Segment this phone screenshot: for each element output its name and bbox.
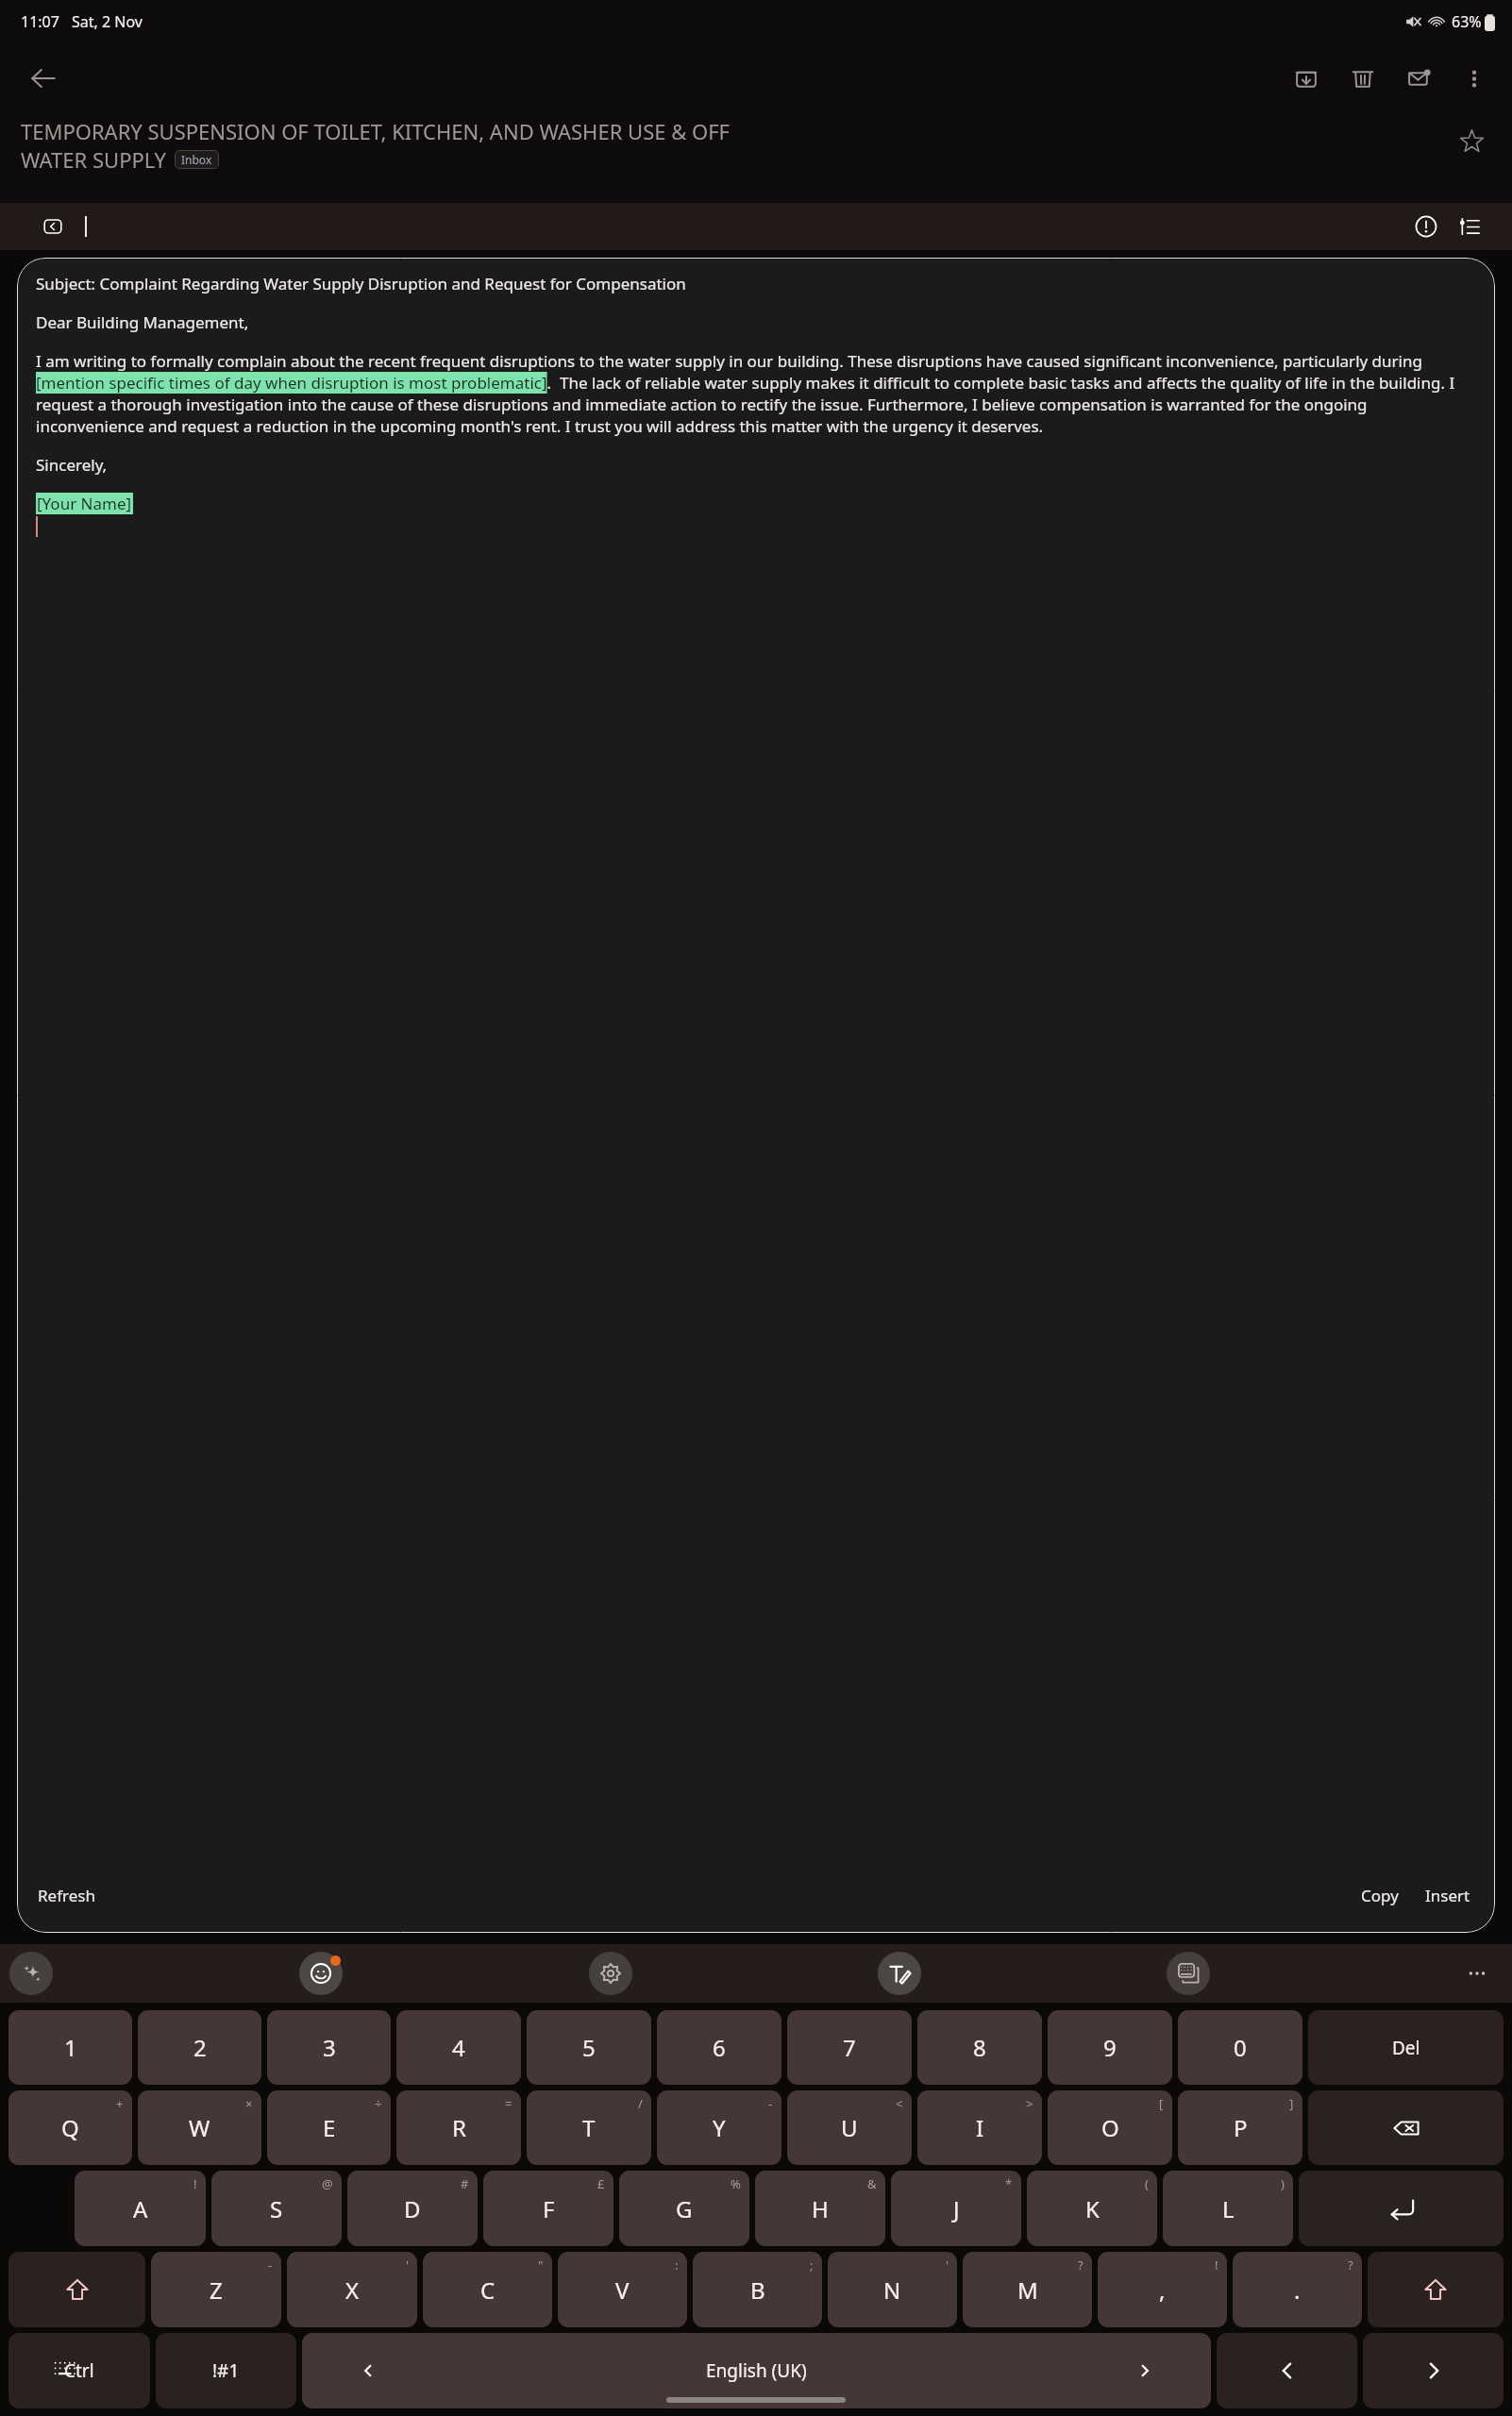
- staticText: 4: [452, 2032, 465, 2063]
- button[interactable]: Refresh: [36, 1879, 97, 1912]
- staticText: E: [323, 2112, 336, 2143]
- staticText: /: [638, 2095, 643, 2112]
- staticText: #: [461, 2175, 469, 2192]
- button[interactable]: Keyboard modes: [1167, 1952, 1210, 1995]
- button[interactable]: 3: [267, 2010, 391, 2085]
- button[interactable]: L: [1163, 2171, 1293, 2246]
- button[interactable]: K: [1027, 2171, 1157, 2246]
- button[interactable]: ,: [1098, 2252, 1227, 2327]
- staticText: Subject: Complaint Regarding Water Suppl…: [36, 273, 686, 294]
- button[interactable]: Mark unread: [1395, 54, 1444, 103]
- button[interactable]: Q: [8, 2090, 132, 2165]
- button[interactable]: C: [423, 2252, 552, 2327]
- button[interactable]: 4: [396, 2010, 521, 2085]
- button[interactable]: D: [347, 2171, 478, 2246]
- button[interactable]: Insert: [1420, 1879, 1476, 1912]
- button[interactable]: F: [483, 2171, 613, 2246]
- button[interactable]: Hide keyboard: [49, 2354, 81, 2386]
- button[interactable]: P: [1178, 2090, 1302, 2165]
- button[interactable]: H: [755, 2171, 885, 2246]
- staticText: &: [867, 2175, 877, 2192]
- staticText: *: [1005, 2175, 1013, 2192]
- staticText: Copy: [1361, 1885, 1399, 1906]
- button[interactable]: !#1: [156, 2333, 296, 2408]
- button[interactable]: Ctrl: [8, 2333, 150, 2408]
- button[interactable]: 0: [1178, 2010, 1302, 2085]
- button[interactable]: M: [963, 2252, 1092, 2327]
- button[interactable]: W: [138, 2090, 261, 2165]
- staticText: ;: [810, 2257, 814, 2273]
- staticText: ?: [1078, 2257, 1084, 2273]
- button[interactable]: 9: [1048, 2010, 1172, 2085]
- staticText: ?: [1348, 2257, 1353, 2273]
- button[interactable]: Format: [1450, 207, 1489, 246]
- button[interactable]: O: [1048, 2090, 1172, 2165]
- button[interactable]: Handwriting: [878, 1952, 921, 1995]
- staticText: 9: [1103, 2032, 1117, 2063]
- button[interactable]: Archive: [1282, 54, 1331, 103]
- button[interactable]: Copy: [1355, 1879, 1404, 1912]
- button[interactable]: Shift: [1368, 2252, 1504, 2327]
- button[interactable]: 2: [138, 2010, 261, 2085]
- button[interactable]: Priority: [1406, 207, 1446, 246]
- button[interactable]: Enter: [1299, 2171, 1504, 2246]
- button[interactable]: Backspace: [1308, 2090, 1504, 2165]
- button[interactable]: Settings: [589, 1952, 632, 1995]
- button[interactable]: 7: [787, 2010, 912, 2085]
- staticText: !: [193, 2175, 197, 2192]
- staticText: K: [1085, 2193, 1100, 2224]
- staticText: L: [1222, 2193, 1235, 2224]
- staticText: 3: [323, 2032, 336, 2063]
- button[interactable]: Emoji: [299, 1952, 343, 1995]
- button[interactable]: 1: [8, 2010, 132, 2085]
- staticText: T: [582, 2112, 596, 2143]
- staticText: ]: [1289, 2095, 1294, 2112]
- button[interactable]: 8: [917, 2010, 1042, 2085]
- button[interactable]: 6: [657, 2010, 781, 2085]
- button[interactable]: Y: [657, 2090, 781, 2165]
- button[interactable]: AI assist: [9, 1952, 53, 1995]
- staticText: ×: [245, 2095, 253, 2112]
- button[interactable]: Space: [302, 2333, 1211, 2408]
- button[interactable]: 5: [527, 2010, 651, 2085]
- staticText: English (UK): [706, 2358, 807, 2383]
- staticText: 8: [973, 2032, 986, 2063]
- button[interactable]: T: [527, 2090, 651, 2165]
- button[interactable]: X: [287, 2252, 417, 2327]
- button[interactable]: Shift: [8, 2252, 145, 2327]
- button[interactable]: U: [787, 2090, 912, 2165]
- button[interactable]: More options: [1450, 54, 1499, 103]
- button[interactable]: V: [558, 2252, 687, 2327]
- staticText: Q: [61, 2112, 79, 2143]
- button[interactable]: Move cursor right: [1363, 2333, 1504, 2408]
- button[interactable]: More: [1455, 1952, 1499, 1995]
- staticText: -: [268, 2257, 273, 2273]
- button[interactable]: Delete: [1338, 54, 1387, 103]
- button[interactable]: A: [75, 2171, 206, 2246]
- staticText: D: [404, 2193, 421, 2224]
- button[interactable]: E: [267, 2090, 391, 2165]
- staticText: (: [1145, 2175, 1149, 2192]
- staticText: P: [1234, 2112, 1248, 2143]
- button[interactable]: .: [1233, 2252, 1362, 2327]
- staticText: W: [189, 2112, 210, 2143]
- button[interactable]: Move cursor left: [1217, 2333, 1357, 2408]
- button[interactable]: S: [211, 2171, 342, 2246]
- button[interactable]: I: [917, 2090, 1042, 2165]
- button[interactable]: Back: [21, 56, 66, 101]
- staticText: Dear Building Management,: [36, 311, 249, 333]
- staticText: M: [1017, 2274, 1038, 2306]
- button[interactable]: G: [619, 2171, 749, 2246]
- staticText: Inbox: [181, 152, 212, 167]
- button[interactable]: Z: [151, 2252, 281, 2327]
- button[interactable]: J: [891, 2171, 1021, 2246]
- button[interactable]: B: [693, 2252, 822, 2327]
- button[interactable]: N: [828, 2252, 957, 2327]
- staticText: Sat, 2 Nov: [72, 11, 143, 32]
- staticText: <: [896, 2095, 903, 2112]
- staticText: G: [676, 2193, 693, 2224]
- button[interactable]: Star: [1450, 119, 1493, 162]
- button[interactable]: Del: [1308, 2010, 1504, 2085]
- button[interactable]: Collapse: [36, 210, 70, 243]
- button[interactable]: R: [396, 2090, 521, 2165]
